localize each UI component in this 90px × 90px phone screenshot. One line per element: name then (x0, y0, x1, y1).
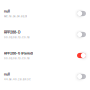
staticText: null (4, 72, 10, 76)
staticText: null (4, 9, 10, 13)
staticText: 00:0E:08:13:C0:18 (4, 36, 30, 39)
button[interactable]: null (0, 66, 90, 87)
button[interactable]: RPP288-D (0, 24, 90, 45)
staticText: RPP288-D (4, 30, 21, 34)
staticText: 44:56:40:28:BF:3C (4, 78, 31, 81)
staticText: 00:0E:08:13:C0:18 (4, 57, 30, 60)
staticText: RPP288-6 (Paired) (4, 51, 33, 55)
button[interactable]: RPP288-6 (Paired) (0, 45, 90, 66)
button[interactable]: null (0, 3, 90, 24)
staticText: MC:16:5A:54:8E:51 (4, 15, 27, 18)
